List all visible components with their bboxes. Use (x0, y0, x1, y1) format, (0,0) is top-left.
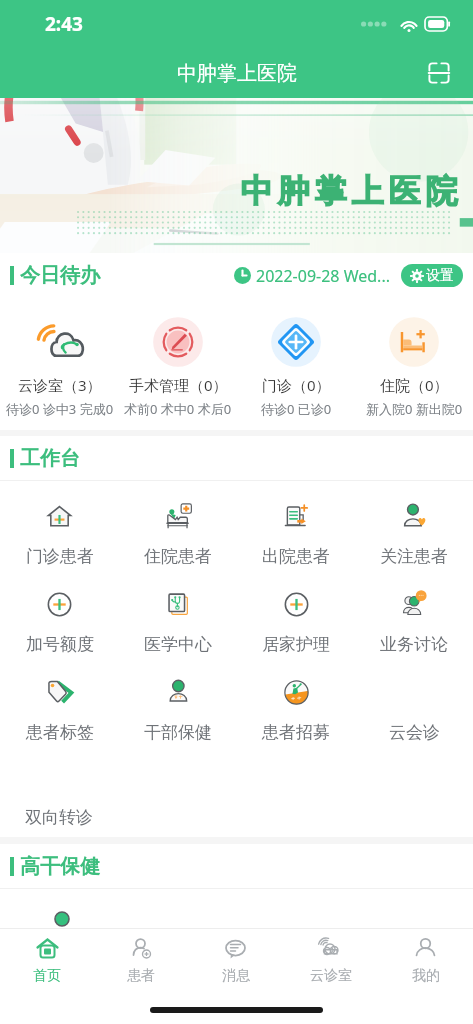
staticText: 住院（0） (380, 375, 449, 395)
staticText: 患者标签 (26, 722, 94, 743)
staticText: 设置 (426, 267, 454, 285)
button[interactable]: 业务讨论 (355, 589, 473, 655)
staticText: 双向转诊 (25, 807, 93, 828)
staticText: 业务讨论 (380, 634, 448, 655)
staticText: 患者 (127, 967, 155, 985)
button[interactable]: 患者 (94, 929, 188, 985)
staticText: 待诊0 已诊0 (261, 400, 332, 418)
staticText: 住院患者 (144, 546, 212, 567)
staticText: 云诊室 (310, 967, 352, 985)
button[interactable]: 云诊室 (283, 929, 378, 985)
staticText: 新入院0 新出院0 (366, 400, 463, 418)
staticText: 手术管理（0） (129, 375, 228, 395)
button[interactable]: 住院患者 (119, 501, 237, 567)
staticText: 关注患者 (380, 546, 448, 567)
button[interactable]: 加号额度 (0, 589, 119, 655)
button[interactable]: 云诊室（3） (0, 313, 119, 420)
staticText: 医学中心 (144, 634, 212, 655)
button[interactable]: 我的 (378, 929, 473, 985)
staticText: 患者招募 (262, 722, 330, 743)
button[interactable]: 消息 (188, 929, 283, 985)
staticText: 工作台 (20, 446, 80, 471)
staticText: 我的 (412, 967, 440, 985)
staticText: 高干保健 (20, 854, 100, 879)
button[interactable]: 干部保健 (119, 677, 237, 743)
staticText: 云诊室（3） (18, 375, 102, 395)
staticText: 加号额度 (26, 634, 94, 655)
button[interactable]: 医学中心 (119, 589, 237, 655)
staticText: 首页 (33, 967, 61, 985)
staticText: 2:43 (45, 11, 83, 37)
button[interactable]: 首页 (0, 929, 94, 985)
staticText: 术前0 术中0 术后0 (124, 400, 232, 418)
button[interactable]: 手术管理（0） (119, 313, 237, 420)
button[interactable]: 住院（0） (355, 313, 473, 420)
button[interactable]: 双向转诊 (0, 762, 118, 828)
button[interactable]: Scan QR code (423, 57, 455, 89)
button[interactable]: 出院患者 (237, 501, 355, 567)
staticText: 消息 (222, 967, 250, 985)
button[interactable]: 设置 (401, 264, 463, 287)
staticText: 门诊患者 (26, 546, 94, 567)
button[interactable]: 居家护理 (237, 589, 355, 655)
staticText: 干部保健 (144, 722, 212, 743)
staticText: 门诊（0） (262, 375, 331, 395)
button[interactable]: 门诊（0） (237, 313, 355, 420)
button[interactable]: 患者标签 (0, 677, 119, 743)
staticText: 中肿掌上医院 (238, 171, 460, 211)
button[interactable]: 患者招募 (237, 677, 355, 743)
button[interactable]: 门诊患者 (0, 501, 119, 567)
staticText: 居家护理 (262, 634, 330, 655)
staticText: 待诊0 诊中3 完成0 (6, 400, 114, 418)
staticText: 今日待办 (20, 263, 100, 288)
button[interactable]: 关注患者 (355, 501, 473, 567)
staticText: 2022-09-28 Wed... (256, 265, 390, 287)
staticText: 中肿掌上医院 (177, 61, 297, 86)
staticText: 出院患者 (262, 546, 330, 567)
button[interactable]: 云会诊 (355, 677, 473, 743)
staticText: 云会诊 (389, 722, 440, 743)
